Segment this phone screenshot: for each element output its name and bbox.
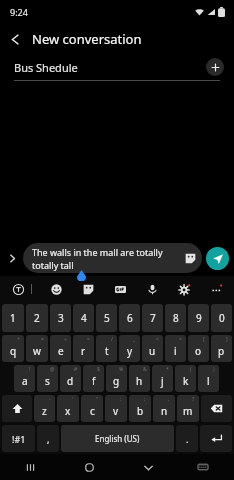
staticText: 9 [196, 311, 202, 325]
button[interactable]: Stickers [184, 252, 197, 265]
staticText: f [92, 374, 96, 388]
button[interactable]: GIF [110, 279, 130, 299]
button[interactable]: Home [77, 455, 101, 479]
button[interactable]: 0 [211, 304, 232, 332]
staticText: [ [203, 336, 205, 343]
button[interactable]: , [153, 395, 175, 422]
staticText: o [195, 344, 202, 358]
button[interactable]: ? [177, 395, 199, 422]
button[interactable]: ; [129, 395, 151, 422]
staticText: h [136, 374, 143, 388]
staticText: $ [97, 366, 100, 373]
button[interactable]: 2 [26, 304, 48, 332]
button[interactable]: ' [57, 395, 79, 422]
button[interactable]: 8 [165, 304, 186, 332]
button[interactable]: ÷ [50, 335, 71, 362]
staticText: i [174, 344, 177, 358]
button[interactable]: Voice typing [8, 279, 28, 299]
button[interactable]: More options [206, 279, 226, 299]
staticText: < [156, 336, 159, 343]
button[interactable]: 4 [73, 304, 94, 332]
button[interactable]: # [60, 365, 81, 392]
button[interactable]: 1 [2, 304, 24, 332]
button[interactable]: 5 [96, 304, 117, 332]
button[interactable]: Backspace [201, 395, 232, 422]
button[interactable]: Recents [18, 455, 42, 479]
button[interactable]: , [37, 425, 59, 452]
button[interactable]: 6 [119, 304, 140, 332]
staticText: b [137, 404, 144, 418]
staticText: j [161, 374, 164, 388]
button[interactable]: + [2, 335, 24, 362]
staticText: ' [72, 396, 74, 403]
staticText: g [113, 374, 120, 388]
button[interactable]: > [165, 335, 186, 362]
button[interactable]: !#1 [2, 425, 35, 452]
button[interactable]: 9 [188, 304, 209, 332]
button[interactable]: ( [175, 365, 196, 392]
button[interactable]: × [26, 335, 48, 362]
button[interactable]: / [96, 335, 117, 362]
button[interactable]: % [106, 365, 127, 392]
button[interactable]: 7 [142, 304, 163, 332]
staticText: a [22, 374, 28, 388]
staticText: !#1 [12, 433, 26, 445]
staticText: @ [50, 366, 55, 373]
button[interactable]: English (US) [61, 425, 174, 452]
staticText: m [183, 404, 193, 418]
staticText: ( [190, 366, 192, 373]
button[interactable]: ) [198, 365, 219, 392]
button[interactable]: Send [206, 247, 229, 270]
button[interactable]: " [81, 395, 103, 422]
button[interactable]: Keyboard layout [191, 455, 215, 479]
button[interactable]: Enter [200, 425, 232, 452]
staticText: - [49, 396, 51, 403]
staticText: ! [29, 366, 31, 373]
staticText: w [33, 344, 41, 358]
staticText: u [149, 344, 156, 358]
button[interactable]: Back [0, 24, 30, 54]
button[interactable]: [ [188, 335, 209, 362]
staticText: + [17, 336, 20, 343]
staticText: x [65, 404, 71, 418]
button[interactable]: Settings [174, 279, 194, 299]
button[interactable]: Emoji [46, 279, 66, 299]
button[interactable]: Microphone [142, 279, 162, 299]
button[interactable]: Stickers [78, 279, 98, 299]
button[interactable]: _ [119, 335, 140, 362]
staticText: y [127, 344, 133, 358]
staticText: 5 [104, 311, 110, 325]
staticText: t [105, 344, 109, 358]
button[interactable]: . [176, 425, 198, 452]
staticText: , [47, 433, 50, 445]
button[interactable]: Expand options [4, 250, 21, 267]
staticText: ; [144, 396, 146, 403]
staticText: e [58, 344, 64, 358]
button[interactable]: @ [37, 365, 58, 392]
staticText: ] [226, 336, 228, 343]
button[interactable]: ! [14, 365, 35, 392]
staticText: k [183, 374, 189, 388]
button[interactable]: The walls in the mall are totally [23, 243, 202, 273]
staticText: ) [213, 366, 215, 373]
staticText: v [113, 404, 119, 418]
staticText: l [207, 374, 210, 388]
button[interactable]: ] [211, 335, 232, 362]
button[interactable]: Shift [2, 395, 32, 422]
button[interactable]: < [142, 335, 163, 362]
button[interactable]: Add recipient [206, 58, 224, 76]
button[interactable]: = [73, 335, 94, 362]
staticText: 3 [58, 311, 64, 325]
staticText: The walls in the mall are totally [32, 246, 163, 258]
button[interactable]: 3 [50, 304, 71, 332]
staticText: totally tall [32, 259, 74, 271]
button[interactable]: Hide keyboard [136, 455, 160, 479]
staticText: New conversation [32, 30, 142, 48]
button[interactable]: $ [83, 365, 104, 392]
staticText: 4 [81, 311, 87, 325]
staticText: * [166, 366, 169, 373]
button[interactable]: * [152, 365, 173, 392]
button[interactable]: - [34, 395, 55, 422]
button[interactable]: : [105, 395, 127, 422]
button[interactable]: & [129, 365, 150, 392]
